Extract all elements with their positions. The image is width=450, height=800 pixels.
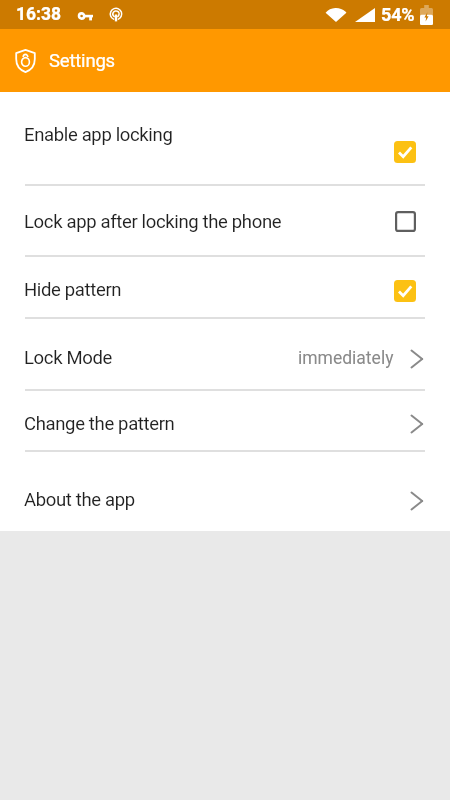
staticText: Hide pattern [24, 279, 122, 301]
button[interactable]: Enable app locking [0, 92, 450, 184]
button[interactable]: Hide pattern [0, 255, 450, 317]
staticText: Enable app locking [24, 124, 173, 146]
staticText: Change the pattern [24, 413, 175, 435]
staticText: Lock app after locking the phone [24, 211, 282, 233]
button[interactable]: Lock Mode [0, 317, 450, 389]
staticText: immediately [298, 348, 394, 369]
staticText: Lock Mode [24, 347, 112, 369]
staticText: About the app [24, 489, 135, 511]
button[interactable]: Lock app after locking the phone [0, 184, 450, 255]
button[interactable]: Change the pattern [0, 389, 450, 450]
staticText: 54% [381, 4, 415, 25]
staticText: Settings [49, 50, 115, 72]
button[interactable]: About the app [0, 450, 450, 531]
staticText: 16:38 [16, 4, 62, 25]
